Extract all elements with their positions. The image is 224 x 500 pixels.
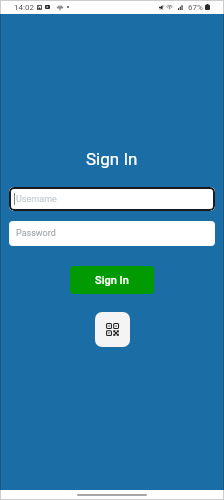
button[interactable]: Sign In (70, 266, 154, 294)
staticText: Sign In (86, 149, 138, 169)
button[interactable]: Password (9, 221, 215, 246)
staticText: Username (16, 194, 57, 205)
staticText: Sign In (95, 274, 129, 287)
button[interactable]: Username (9, 187, 215, 211)
button[interactable]: Scan QR code (95, 312, 130, 347)
staticText: 67% (188, 3, 203, 12)
staticText: Password (16, 228, 56, 239)
staticText: 14:02 (14, 3, 34, 12)
